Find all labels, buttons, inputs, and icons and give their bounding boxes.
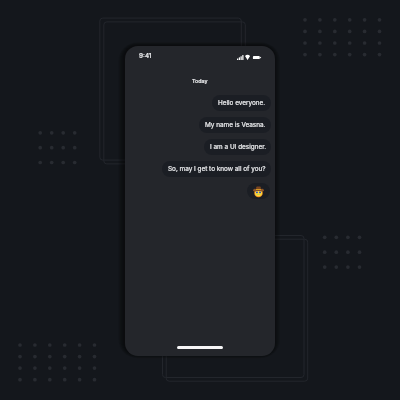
button[interactable]: I am a UI designer. — [204, 139, 271, 155]
staticText: My name is Veasna. — [205, 121, 266, 129]
button[interactable]: Cowboy face emoji — [247, 183, 270, 199]
staticText: Today — [192, 78, 208, 84]
staticText: 9:41 — [139, 52, 152, 60]
button[interactable]: So, may I get to know all of you? — [162, 161, 271, 177]
staticText: Hello everyone. — [218, 99, 266, 107]
staticText: So, may I get to know all of you? — [168, 165, 266, 173]
staticText: I am a UI designer. — [210, 143, 266, 151]
button[interactable]: My name is Veasna. — [199, 117, 271, 133]
button[interactable]: Hello everyone. — [212, 95, 271, 111]
